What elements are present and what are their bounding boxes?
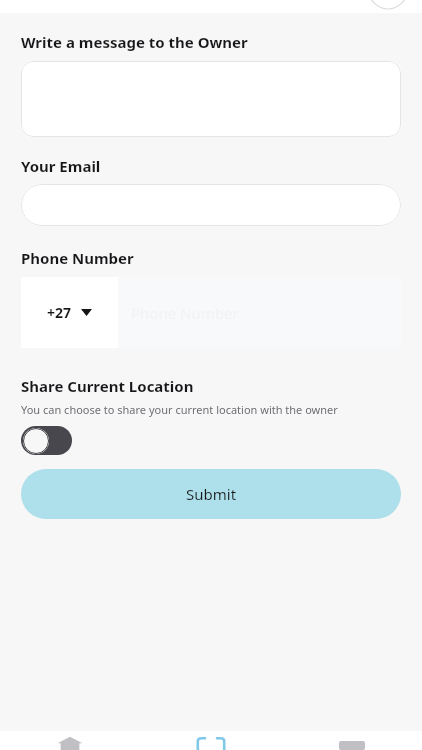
staticText: +27 <box>47 303 72 322</box>
button[interactable]: +27 <box>21 277 118 348</box>
staticText: Write a message to the Owner <box>21 32 248 52</box>
button[interactable]: More <box>281 731 422 750</box>
staticText: You can choose to share your current loc… <box>21 402 338 417</box>
button[interactable]: Share current location toggle <box>21 426 72 455</box>
staticText: Submit <box>186 484 237 504</box>
button[interactable] <box>21 61 401 137</box>
button[interactable]: Submit <box>21 469 401 519</box>
staticText: Your Email <box>21 156 101 176</box>
button[interactable]: Scan <box>140 731 281 750</box>
button[interactable] <box>21 184 401 226</box>
button[interactable]: Home <box>0 731 140 750</box>
staticText: Share Current Location <box>21 376 194 396</box>
staticText: Phone Number <box>21 248 134 268</box>
